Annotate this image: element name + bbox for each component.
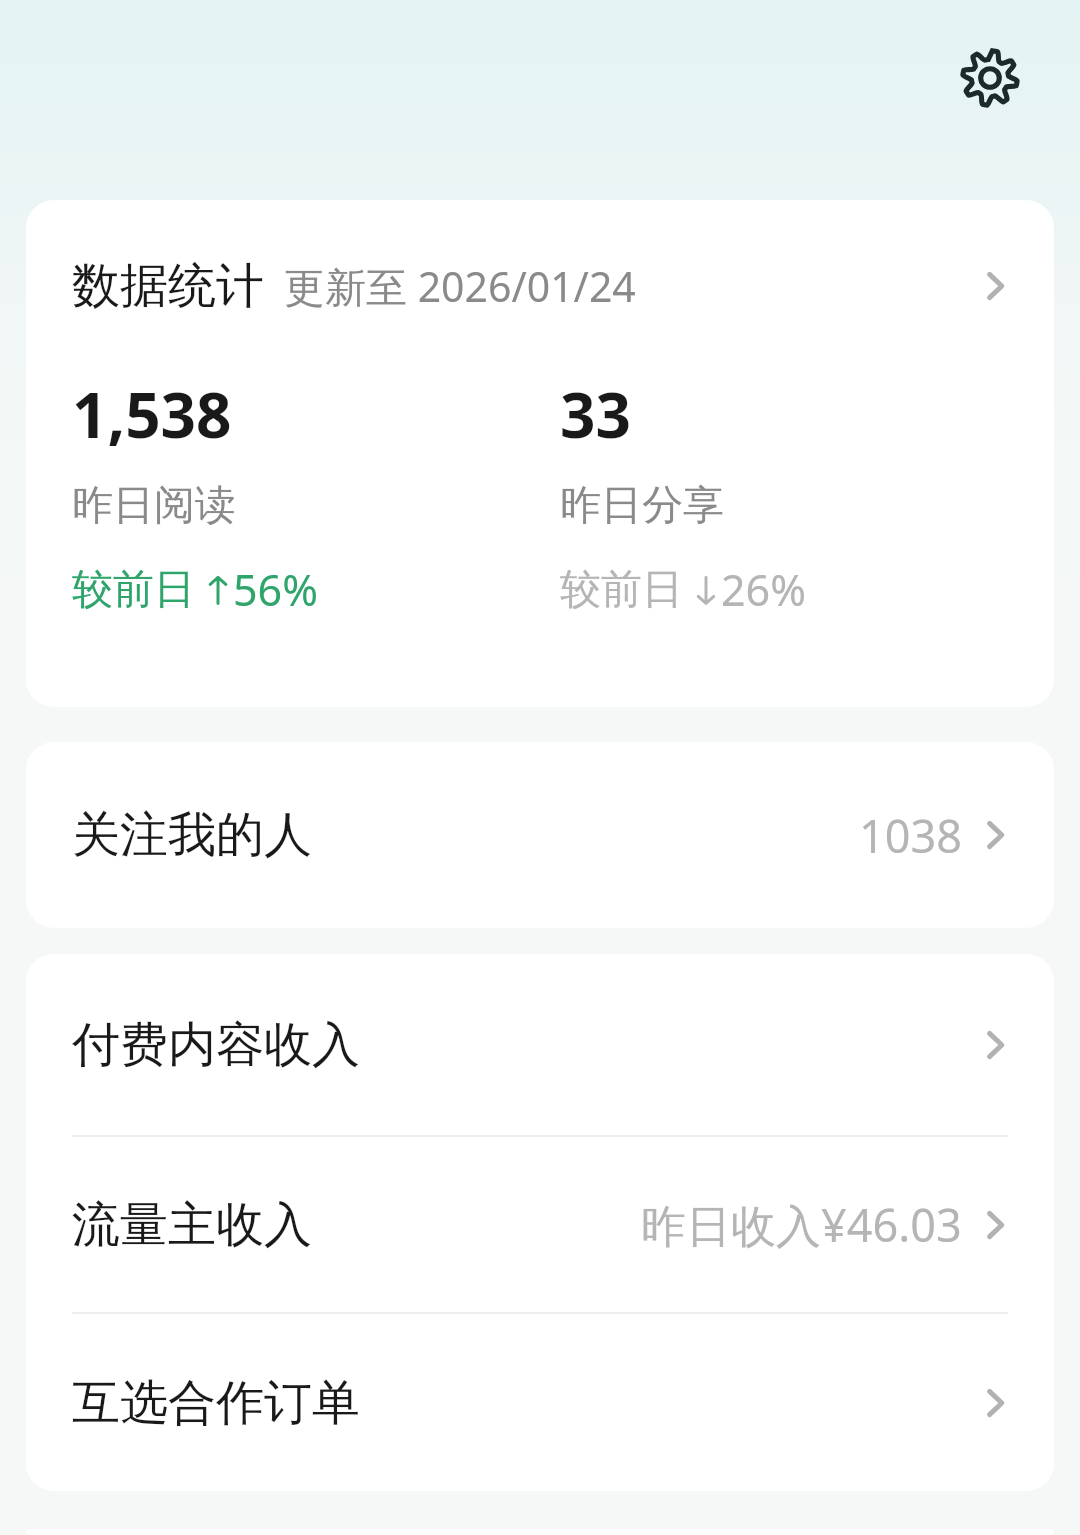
staticText: 昨日阅读 <box>72 480 236 532</box>
button[interactable]: 关注我的人 <box>26 742 1054 928</box>
staticText: 1038 <box>859 805 962 866</box>
staticText: 付费内容收入 <box>72 1015 360 1075</box>
button[interactable]: 数据统计 <box>26 200 1054 372</box>
staticText: 数据统计 <box>72 256 264 316</box>
staticText: 33 <box>560 372 631 456</box>
staticText: 1,538 <box>72 372 232 456</box>
button[interactable]: 互选合作订单 <box>26 1314 1054 1491</box>
button[interactable]: 付费内容收入 <box>26 954 1054 1135</box>
staticText: 26% <box>721 560 806 619</box>
staticText: 56% <box>233 560 318 619</box>
staticText: 更新至 2026/01/24 <box>284 258 636 314</box>
staticText: 流量主收入 <box>72 1195 312 1255</box>
staticText: 昨日分享 <box>560 480 724 532</box>
button[interactable]: 流量主收入 <box>26 1137 1054 1312</box>
staticText: 较前日 <box>560 564 683 616</box>
staticText: 较前日 <box>72 564 195 616</box>
staticText: 关注我的人 <box>72 805 312 865</box>
button[interactable]: Settings <box>946 34 1034 122</box>
staticText: 昨日收入¥46.03 <box>641 1194 962 1255</box>
staticText: 互选合作订单 <box>72 1373 360 1433</box>
